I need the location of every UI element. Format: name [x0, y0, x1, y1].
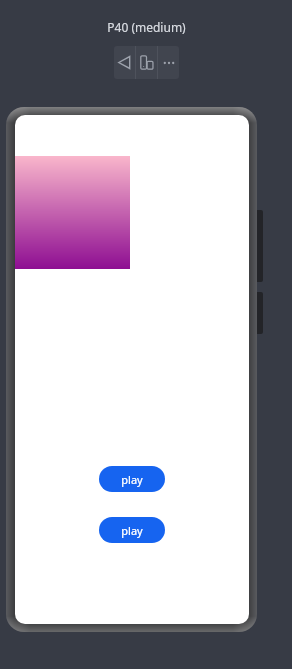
button[interactable]: Back: [114, 46, 135, 79]
button[interactable]: More options: [158, 46, 179, 79]
staticText: P40 (medium): [107, 19, 186, 35]
staticText: play: [121, 523, 143, 538]
button[interactable]: play: [99, 517, 165, 543]
button[interactable]: Device: [136, 46, 157, 79]
button[interactable]: play: [99, 466, 165, 492]
staticText: play: [121, 472, 143, 487]
